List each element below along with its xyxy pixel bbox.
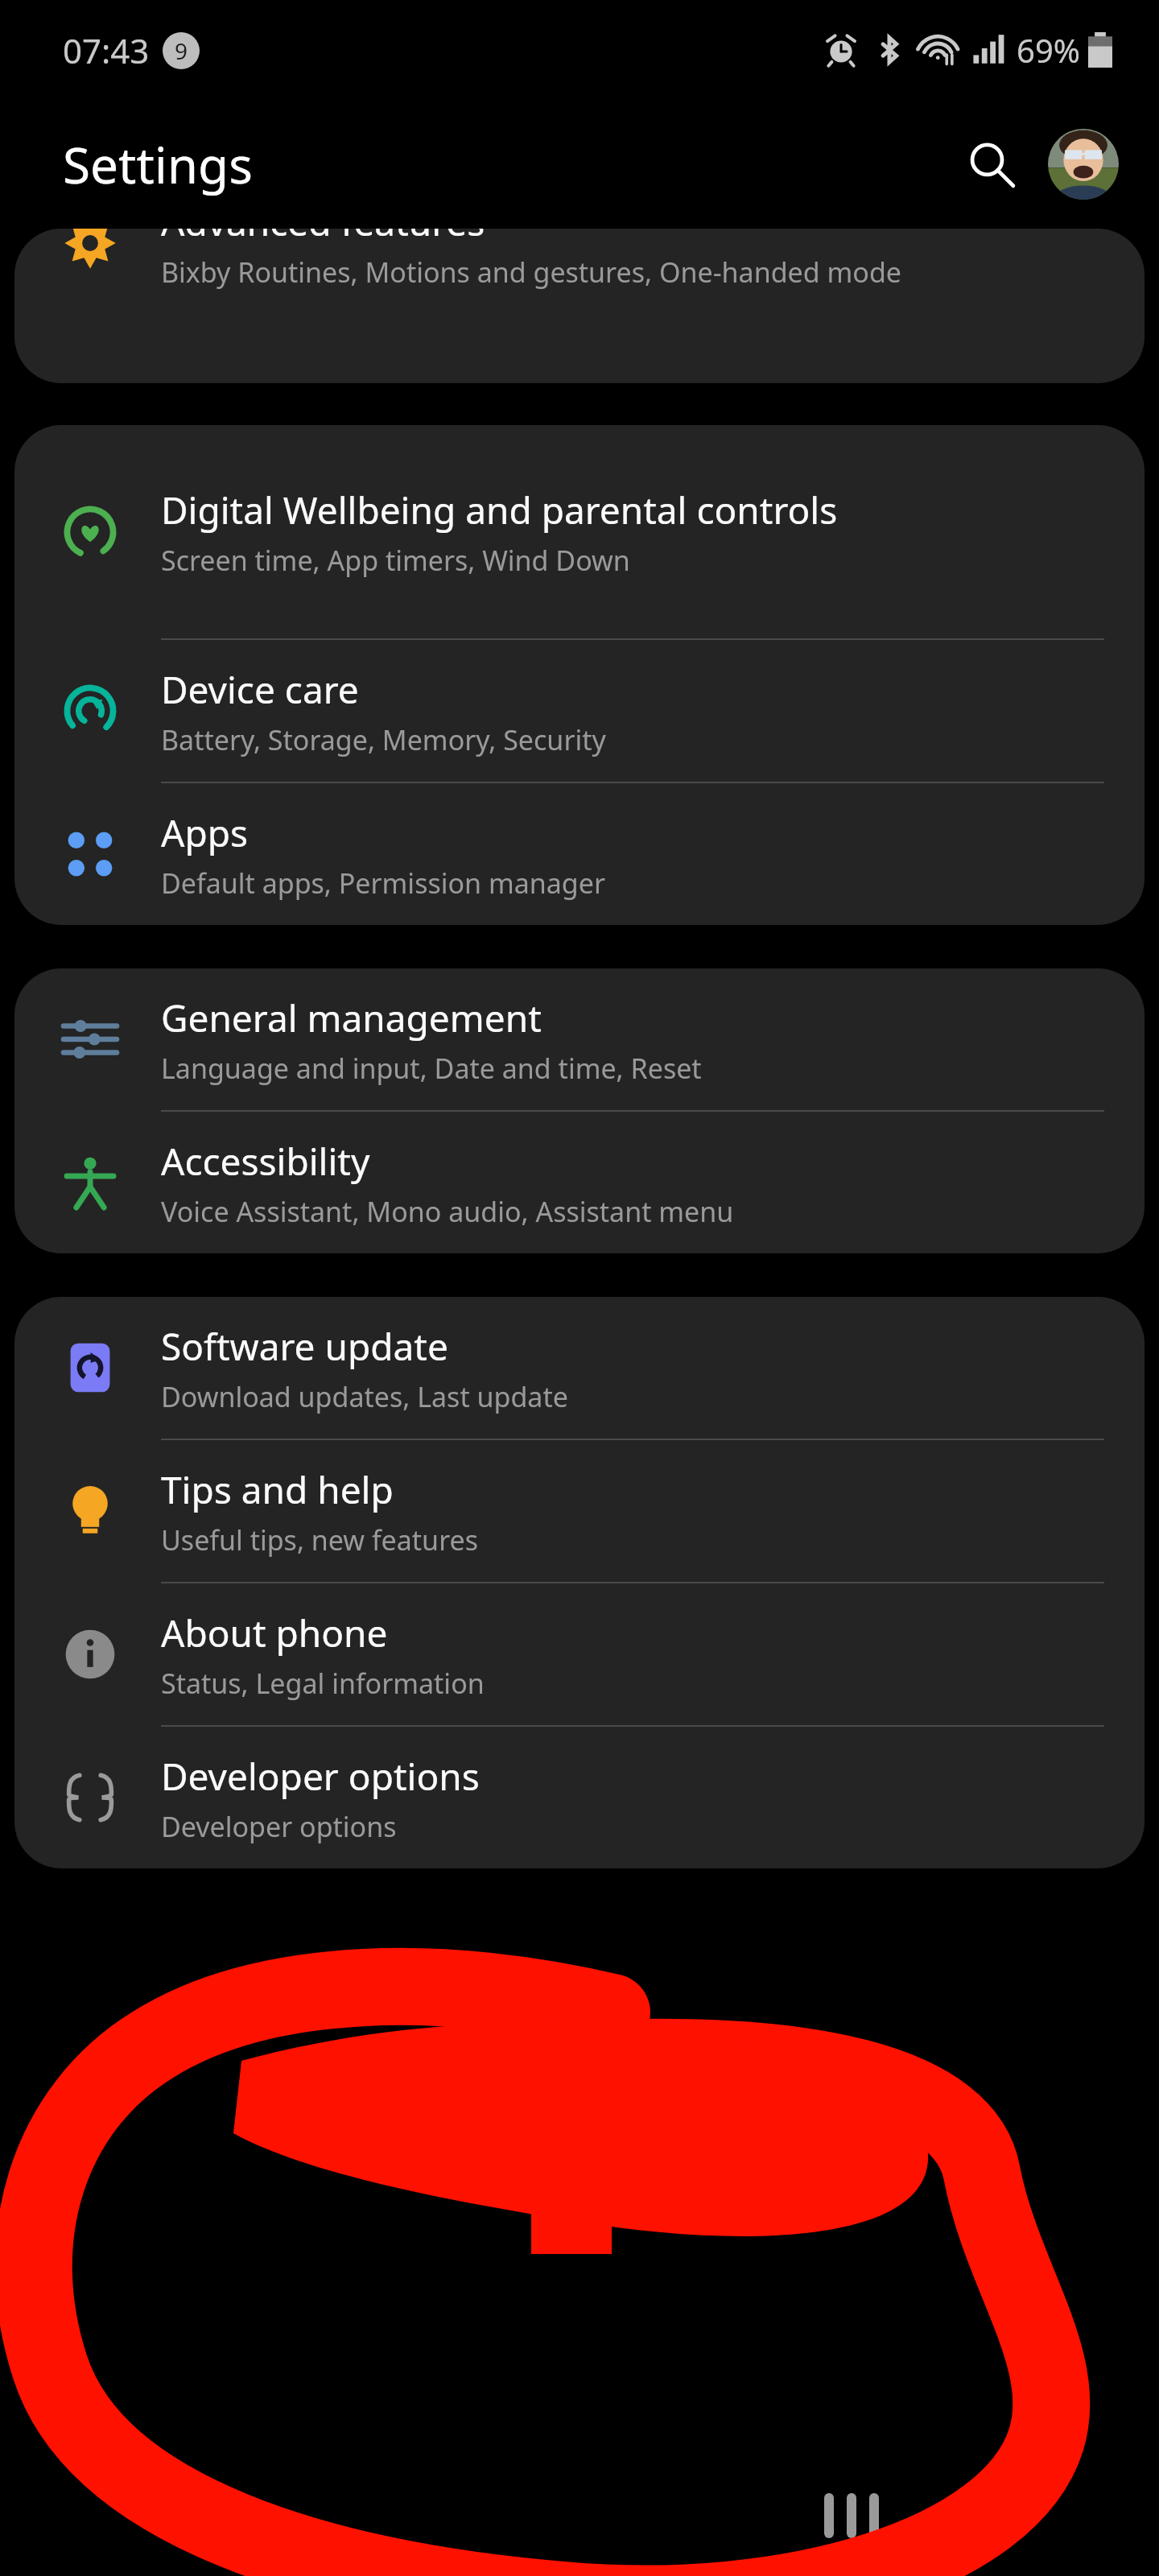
staticText: Digital Wellbeing and parental controls bbox=[161, 485, 838, 535]
button[interactable]: Device care bbox=[14, 640, 1145, 782]
staticText: 07:43 bbox=[63, 27, 150, 73]
staticText: Battery, Storage, Memory, Security bbox=[161, 721, 606, 758]
button[interactable]: Software update bbox=[14, 1297, 1145, 1439]
staticText: Default apps, Permission manager bbox=[161, 865, 605, 902]
button[interactable]: About phone bbox=[14, 1583, 1145, 1725]
staticText: Advanced features bbox=[161, 229, 485, 247]
button[interactable]: Account bbox=[1046, 127, 1120, 201]
staticText: Voice Assistant, Mono audio, Assistant m… bbox=[161, 1193, 734, 1230]
button[interactable]: Tips and help bbox=[14, 1440, 1145, 1582]
staticText: Language and input, Date and time, Reset bbox=[161, 1050, 702, 1087]
button[interactable]: Digital Wellbeing and parental controls bbox=[14, 425, 1145, 638]
staticText: Developer options bbox=[161, 1808, 397, 1845]
staticText: 9 bbox=[175, 35, 188, 66]
staticText: Download updates, Last update bbox=[161, 1378, 568, 1415]
staticText: Bixby Routines, Motions and gestures, On… bbox=[161, 254, 901, 291]
button[interactable]: Recent apps bbox=[803, 2471, 900, 2560]
staticText: 69% bbox=[1017, 28, 1080, 72]
staticText: About phone bbox=[161, 1608, 388, 1658]
staticText: Status, Legal information bbox=[161, 1665, 485, 1702]
button[interactable]: Developer options bbox=[14, 1727, 1145, 1868]
staticText: Software update bbox=[161, 1321, 448, 1372]
staticText: General management bbox=[161, 993, 542, 1043]
staticText: Developer options bbox=[161, 1751, 480, 1802]
staticText: Accessibility bbox=[161, 1136, 370, 1187]
button[interactable]: Search bbox=[947, 120, 1035, 208]
button[interactable]: Advanced features bbox=[14, 229, 1145, 320]
button[interactable]: Accessibility bbox=[14, 1112, 1145, 1253]
staticText: Device care bbox=[161, 664, 359, 715]
staticText: Screen time, App timers, Wind Down bbox=[161, 542, 630, 579]
staticText: Useful tips, new features bbox=[161, 1521, 478, 1558]
button[interactable]: General management bbox=[14, 968, 1145, 1110]
staticText: Apps bbox=[161, 807, 249, 858]
staticText: Settings bbox=[63, 130, 253, 198]
button[interactable]: Apps bbox=[14, 783, 1145, 925]
staticText: Tips and help bbox=[161, 1464, 394, 1515]
